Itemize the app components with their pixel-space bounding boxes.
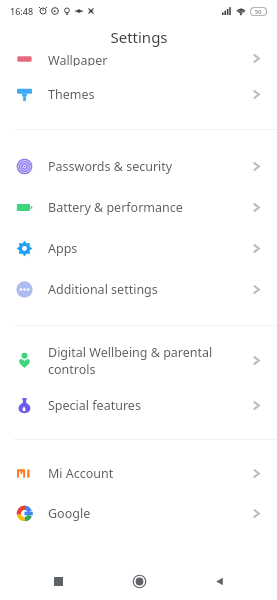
button[interactable]: Mi Account xyxy=(0,453,277,493)
button[interactable]: Additional settings xyxy=(0,269,277,310)
button[interactable]: Battery & performance xyxy=(0,187,277,228)
staticText: Apps xyxy=(48,240,238,257)
staticText: Digital Wellbeing & parental controls xyxy=(48,344,238,377)
button[interactable]: Passwords & security xyxy=(0,146,277,187)
staticText: 50 xyxy=(255,8,262,15)
staticText: Additional settings xyxy=(48,281,238,298)
button[interactable]: Digital Wellbeing & parental controls xyxy=(0,336,277,384)
staticText: Settings xyxy=(110,27,168,47)
button[interactable]: Special features xyxy=(0,384,277,426)
button[interactable]: Google xyxy=(0,493,277,533)
staticText: Passwords & security xyxy=(48,158,238,175)
button[interactable]: Themes xyxy=(0,74,277,114)
button[interactable]: Wallpaper xyxy=(0,52,277,66)
button[interactable]: Recents xyxy=(36,562,80,600)
button[interactable]: Apps xyxy=(0,228,277,269)
staticText: Battery & performance xyxy=(48,199,238,216)
staticText: Google xyxy=(48,505,238,522)
staticText: Wallpaper xyxy=(48,52,250,66)
staticText: Special features xyxy=(48,397,238,414)
staticText: Themes xyxy=(48,86,238,103)
staticText: 16:48 xyxy=(10,5,34,17)
button[interactable]: Back xyxy=(197,562,241,600)
staticText: Mi Account xyxy=(48,465,238,482)
button[interactable]: Home xyxy=(117,562,161,600)
